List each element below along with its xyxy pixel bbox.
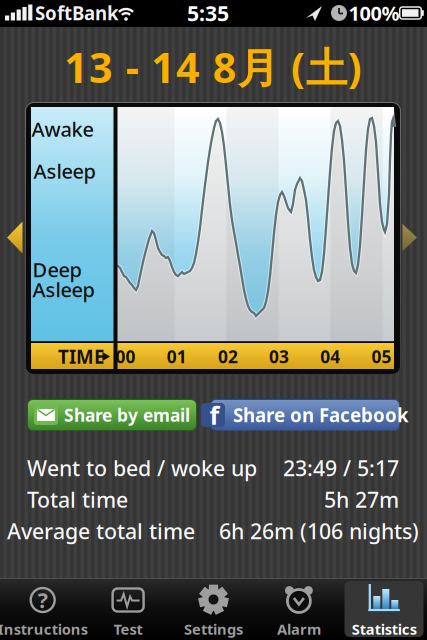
staticText: Awake (31, 116, 93, 142)
staticText: Average total time (7, 517, 195, 545)
staticText: 00 (115, 345, 135, 368)
button[interactable]: Statistics (342, 578, 427, 640)
staticText: Share by email (64, 403, 190, 426)
staticText: 5:35 (187, 0, 229, 27)
staticText: Alarm (277, 619, 321, 639)
staticText: 04 (320, 345, 340, 368)
button[interactable]: Alarm (256, 578, 341, 640)
staticText: 13 - 14 8月 (土) (64, 40, 362, 94)
staticText: Test (114, 619, 143, 639)
button[interactable]: ? (0, 578, 85, 640)
staticText: TIME (58, 344, 104, 369)
staticText: 100% (348, 0, 399, 26)
staticText: Total time (27, 485, 128, 514)
staticText: 6h 26m (106 nights) (219, 517, 419, 545)
staticText: Statistics (352, 619, 417, 639)
button[interactable]: Next night (402, 224, 417, 251)
staticText: SoftBank (35, 1, 119, 25)
staticText: Settings (184, 619, 243, 639)
staticText: Deep (32, 256, 81, 283)
staticText: Asleep (32, 276, 94, 303)
staticText: 05 (371, 345, 391, 368)
staticText: 5h 27m (324, 485, 399, 514)
staticText: Instructions (0, 619, 88, 639)
button[interactable]: Settings (171, 578, 256, 640)
staticText: 02 (218, 345, 238, 368)
button[interactable]: f (210, 399, 400, 431)
staticText: 23:49 / 5:17 (283, 454, 399, 482)
button[interactable]: Share by email (27, 399, 197, 431)
staticText: Share on Facebook (233, 403, 409, 427)
button[interactable]: Test (86, 578, 171, 640)
staticText: Went to bed / woke up (27, 454, 257, 482)
staticText: 03 (269, 345, 289, 368)
staticText: 01 (167, 345, 187, 368)
staticText: ? (38, 586, 48, 614)
button[interactable]: Previous night (6, 221, 22, 253)
staticText: Asleep (33, 158, 95, 184)
staticText: f (209, 398, 219, 432)
